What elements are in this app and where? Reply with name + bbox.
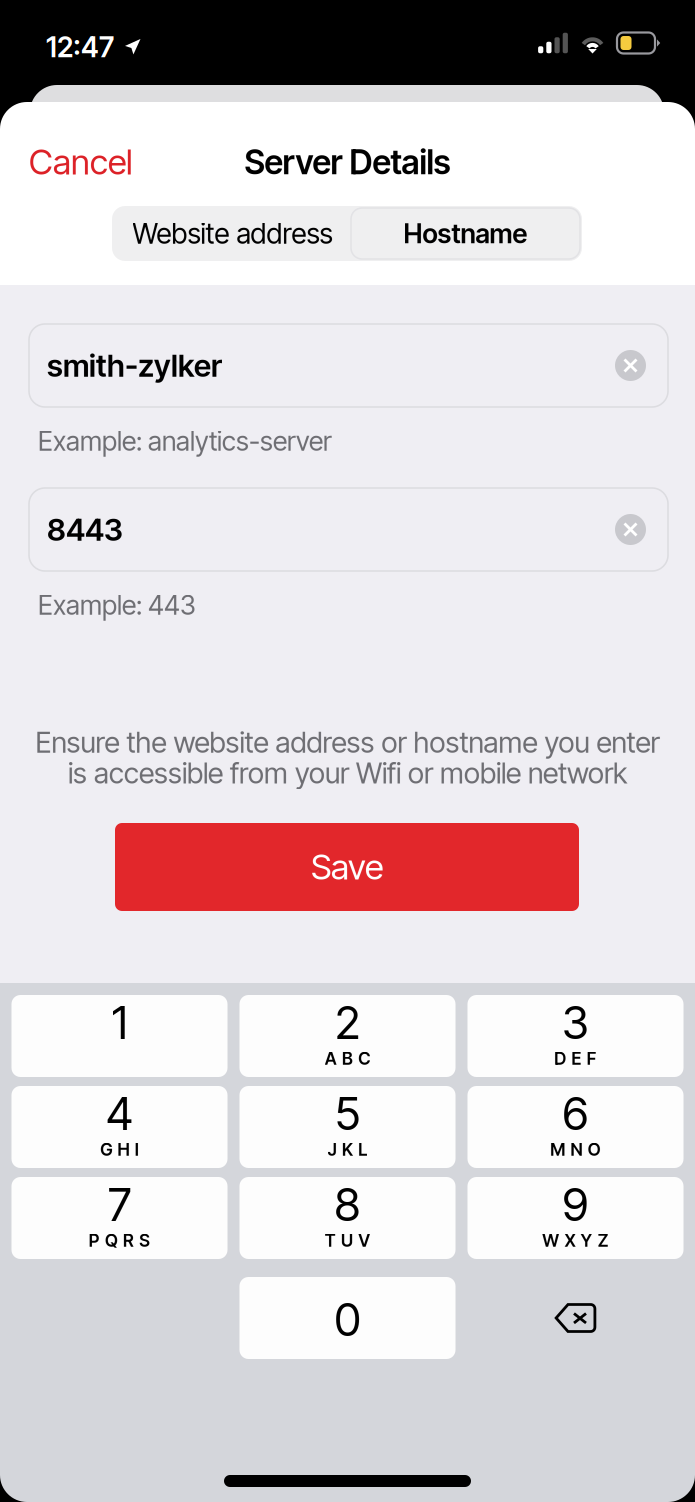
button[interactable]: Clear text [615,350,646,381]
button[interactable]: 1 [11,995,227,1077]
staticText: A B C [325,1048,370,1069]
staticText: W X Y Z [542,1230,609,1251]
staticText: G H I [100,1139,139,1160]
staticText: 3 [562,995,589,1050]
staticText: Save [311,846,383,888]
staticText: 0 [334,1292,360,1347]
staticText: Ensure the website address or hostname y… [35,725,659,760]
button[interactable]: Hostname [351,208,580,259]
staticText: Hostname [403,217,527,250]
staticText: 8 [334,1177,360,1232]
staticText: 7 [108,1177,131,1232]
staticText: Example: analytics-server [38,425,332,457]
button[interactable]: Delete [467,1277,683,1359]
staticText: 2 [335,995,360,1050]
staticText: M N O [550,1139,601,1160]
staticText: 12:47 [46,30,114,64]
button[interactable]: 8 [239,1177,455,1259]
staticText: 6 [562,1086,588,1141]
staticText: Website address [132,217,332,250]
button[interactable]: Clear text [615,514,646,545]
button[interactable]: 0 [239,1277,455,1359]
button[interactable]: 7 [11,1177,227,1259]
staticText: Server Details [244,142,450,182]
button[interactable]: 5 [239,1086,455,1168]
staticText: P Q R S [89,1230,150,1251]
staticText: 1 [111,995,127,1050]
staticText: 9 [562,1177,588,1232]
staticText: smith-zylker [47,347,222,384]
button[interactable]: 3 [467,995,683,1077]
button[interactable]: 6 [467,1086,683,1168]
staticText: Cancel [29,141,133,183]
staticText: D E F [554,1048,597,1069]
staticText: is accessible from your Wifi or mobile n… [68,756,627,790]
staticText: 5 [335,1086,360,1141]
button[interactable]: 4 [11,1086,227,1168]
staticText: J K L [328,1139,367,1160]
button[interactable]: 9 [467,1177,683,1259]
button[interactable]: Cancel [29,139,139,185]
button[interactable]: Save [115,823,579,911]
staticText: 4 [106,1086,133,1141]
staticText: 8443 [47,511,123,548]
staticText: T U V [325,1230,370,1251]
staticText: Example: 443 [38,589,196,621]
button[interactable]: 2 [239,995,455,1077]
button[interactable]: Website address [114,206,351,261]
